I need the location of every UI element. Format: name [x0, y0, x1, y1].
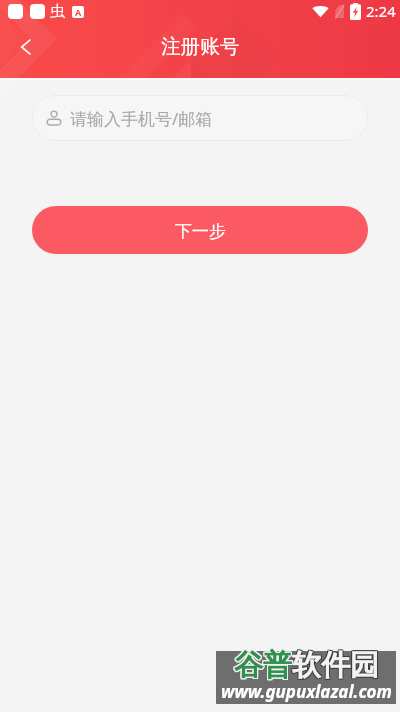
button[interactable]: Back	[0, 21, 52, 73]
staticText: 软件园	[292, 646, 379, 683]
staticText: 软件园	[293, 646, 380, 683]
staticText: 软件园	[292, 647, 379, 684]
staticText: A	[75, 6, 82, 18]
staticText: 谷普	[233, 648, 291, 685]
staticText: 谷普	[234, 646, 292, 683]
staticText: 谷普	[233, 646, 291, 683]
staticText: 谷普	[234, 647, 292, 684]
staticText: 谷普	[233, 647, 291, 684]
staticText: 软件园	[291, 648, 378, 685]
staticText: 谷普	[234, 648, 292, 685]
button[interactable]: 下一步	[32, 206, 368, 254]
staticText: 谷普	[235, 647, 293, 684]
staticText: 谷普	[235, 646, 293, 683]
staticText: 请输入手机号/邮箱	[70, 107, 213, 130]
button[interactable]: 请输入手机号/邮箱	[32, 95, 368, 141]
staticText: 谷普	[235, 648, 293, 685]
staticText: 软件园	[291, 646, 378, 683]
staticText: 软件园	[293, 648, 380, 685]
staticText: 虫	[50, 2, 65, 21]
staticText: 2:24	[366, 1, 396, 21]
staticText: 软件园	[292, 648, 379, 685]
staticText: 软件园	[291, 647, 378, 684]
staticText: 软件园	[293, 647, 380, 684]
staticText: www.gupuxlazal.com	[221, 680, 392, 703]
staticText: 下一步	[175, 221, 226, 242]
staticText: 注册账号	[161, 34, 240, 59]
